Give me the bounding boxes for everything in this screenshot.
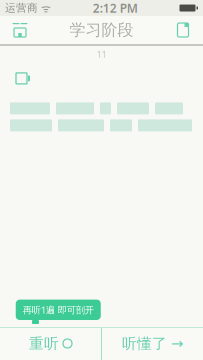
staticText: 学习阶段 [69,20,133,40]
staticText: 11 [96,48,106,60]
staticText: 运营商 [5,1,38,14]
staticText: 再听1遍 即可剖开 [23,304,94,316]
button[interactable]: 重听 [0,327,101,360]
button[interactable]: Notes [166,16,200,44]
staticText: 重听 [29,334,59,352]
button[interactable]: Play audio [10,68,36,88]
button[interactable]: 听懂了 [102,327,203,360]
staticText: → [171,335,183,352]
button[interactable]: Home [3,16,37,44]
staticText: 听懂了 [122,334,167,352]
staticText: 2:12 PM [93,0,138,16]
staticText: ᯤ [38,1,51,15]
